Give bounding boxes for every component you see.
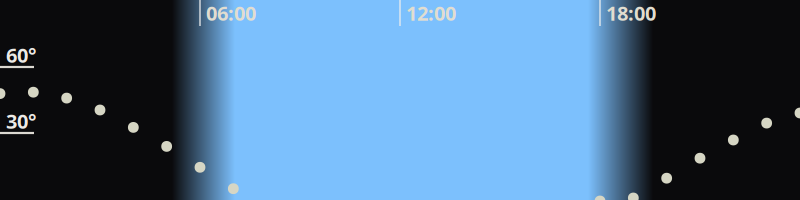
staticText: 30° (6, 108, 36, 134)
staticText: 18:00 (606, 0, 656, 26)
staticText: 12:00 (406, 0, 456, 26)
staticText: 60° (6, 42, 36, 68)
staticText: 06:00 (206, 0, 256, 26)
